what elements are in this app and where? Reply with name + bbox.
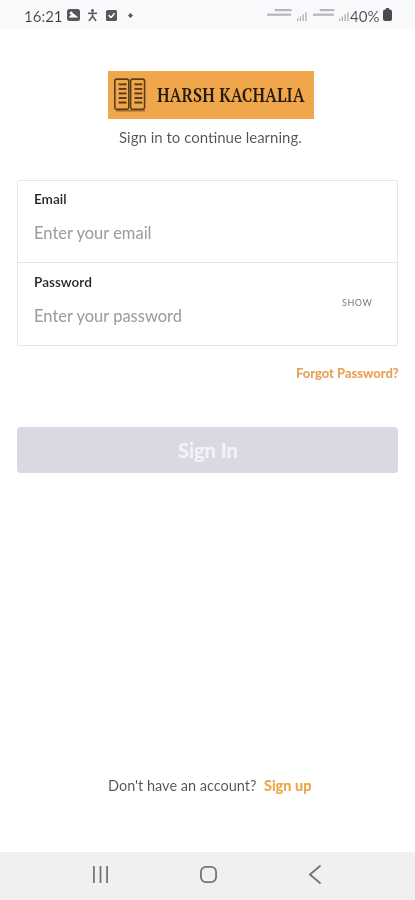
staticText: Forgot Password?: [296, 365, 399, 381]
staticText: Email: [34, 191, 67, 207]
button[interactable]: Home: [184, 862, 232, 886]
staticText: SHOW: [342, 297, 373, 308]
staticText: Password: [34, 274, 92, 290]
staticText: Enter your email: [34, 223, 152, 243]
button[interactable]: SHOW: [342, 297, 373, 308]
button[interactable]: Sign In: [17, 427, 398, 473]
staticText: Sign In: [178, 438, 238, 462]
staticText: 40%: [350, 7, 380, 25]
button[interactable]: Back: [291, 862, 339, 886]
button[interactable]: Recent apps: [76, 862, 124, 886]
staticText: Sign up: [264, 777, 312, 794]
button[interactable]: Email: [17, 180, 398, 262]
staticText: Enter your password: [34, 306, 183, 326]
staticText: HARSH KACHALIA: [157, 81, 305, 108]
button[interactable]: Sign up: [264, 777, 312, 794]
button[interactable]: Password: [17, 263, 398, 345]
staticText: 16:21: [24, 7, 63, 25]
staticText: Sign in to continue learning.: [119, 128, 302, 146]
staticText: Don't have an account?: [108, 777, 257, 794]
button[interactable]: Forgot Password?: [296, 365, 399, 381]
